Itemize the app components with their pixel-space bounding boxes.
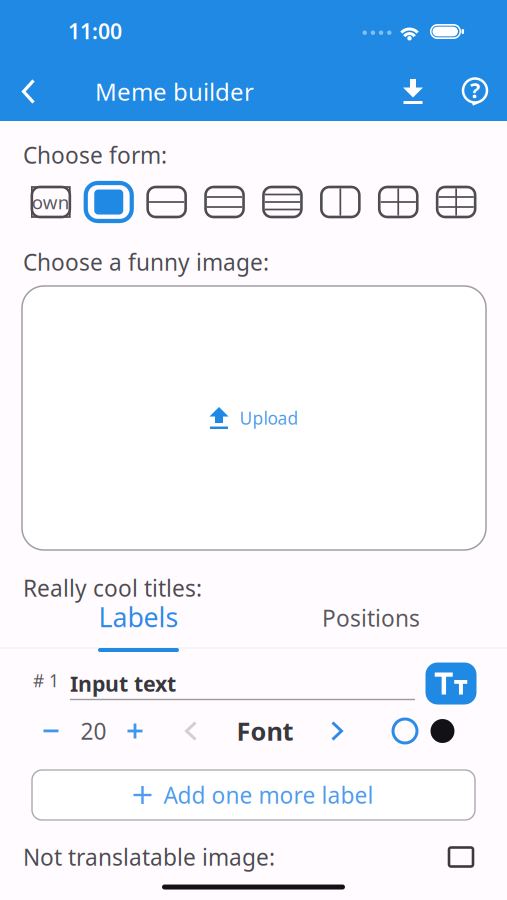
button[interactable]: Two by two [374,182,422,222]
button[interactable]: Single panel [85,182,133,222]
button[interactable]: Two columns [316,182,364,222]
button[interactable]: Decrease font size [34,714,68,748]
button[interactable]: Not translatable image: [0,841,507,873]
button[interactable]: Increase font size [118,714,152,748]
button[interactable]: Black colour [428,719,457,743]
button[interactable]: Text style [425,662,476,704]
button[interactable]: Custom form [27,182,75,222]
staticText: 11:00 [68,17,122,45]
button[interactable]: Upload image [22,286,486,550]
staticText: 20 [80,716,106,746]
button[interactable]: Next font [320,714,354,748]
button[interactable]: Three by two [432,182,480,222]
staticText: Really cool titles: [23,573,202,603]
button[interactable]: Three rows [200,182,248,222]
staticText: own [32,190,70,214]
staticText: Font [236,714,293,748]
staticText: Input text [70,669,176,698]
staticText: Not translatable image: [23,842,275,872]
button[interactable]: White colour [390,719,420,743]
staticText: Add one more label [163,780,373,810]
button[interactable]: Help [449,63,501,119]
button[interactable]: Back [3,62,54,120]
button[interactable]: Download [386,63,439,120]
staticText: ? [470,76,480,104]
staticText: Positions [322,603,420,633]
staticText: Labels [98,599,178,635]
button[interactable]: Two rows [143,182,191,222]
staticText: Choose form: [23,140,167,170]
staticText: Upload [239,406,298,429]
button[interactable]: Labels [78,603,198,651]
button[interactable]: Previous font [174,714,208,748]
button[interactable]: Four rows [258,182,306,222]
button[interactable]: Positions [311,603,431,651]
staticText: Choose a funny image: [23,247,269,277]
button[interactable]: Add one more label [32,770,475,820]
staticText: # 1 [33,669,59,692]
staticText: Meme builder [95,76,254,107]
